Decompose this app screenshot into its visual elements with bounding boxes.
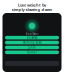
- button[interactable]: Dinner: [5, 50, 59, 54]
- button[interactable]: Morning snack: [5, 41, 59, 44]
- staticText: Breakfast: [26, 36, 37, 39]
- staticText: Dinner: [27, 51, 37, 54]
- staticText: Slow Eater: [25, 32, 38, 36]
- staticText: simply slowing down: [11, 7, 52, 12]
- button[interactable]: Breakfast: [5, 36, 59, 39]
- staticText: Morning snack: [22, 41, 41, 44]
- staticText: Lunch: [28, 46, 36, 49]
- staticText: Lose weight by: [18, 2, 46, 7]
- button[interactable]: Lunch: [5, 46, 59, 49]
